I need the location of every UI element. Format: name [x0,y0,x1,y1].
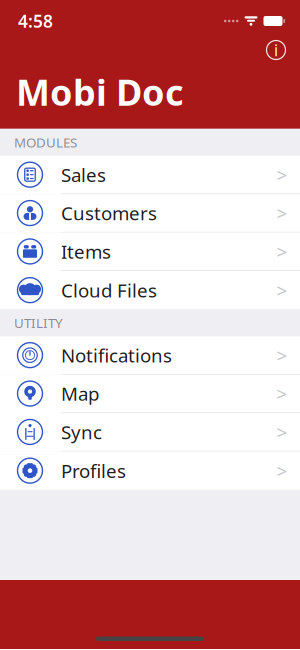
staticText: MODULES [14,133,77,151]
staticText: > [276,278,287,303]
staticText: > [276,162,287,187]
staticText: > [276,201,287,225]
staticText: Sync [61,420,102,444]
button[interactable]: Profiles [0,451,300,490]
staticText: Mobi Doc [16,68,184,116]
button[interactable]: Map [0,375,300,413]
staticText: Items [61,239,111,264]
staticText: Map [61,381,99,406]
staticText: Sales [61,162,106,187]
button[interactable]: Customers [0,194,300,233]
staticText: Cloud Files [61,278,157,303]
staticText: > [276,343,287,368]
staticText: i [274,39,278,61]
staticText: 4:58 [18,9,53,32]
button[interactable]: Items [0,233,300,271]
button[interactable]: Information [258,34,294,66]
staticText: Profiles [61,458,126,483]
staticText: > [276,458,287,483]
button[interactable]: Cloud Files [0,271,300,309]
staticText: Customers [61,201,157,225]
staticText: Notifications [61,343,172,368]
staticText: > [276,239,287,264]
staticText: > [276,420,287,444]
button[interactable]: Notifications [0,336,300,375]
button[interactable]: Sales [0,156,300,194]
staticText: > [276,381,287,406]
staticText: UTILITY [14,314,63,332]
button[interactable]: Sync [0,413,300,451]
